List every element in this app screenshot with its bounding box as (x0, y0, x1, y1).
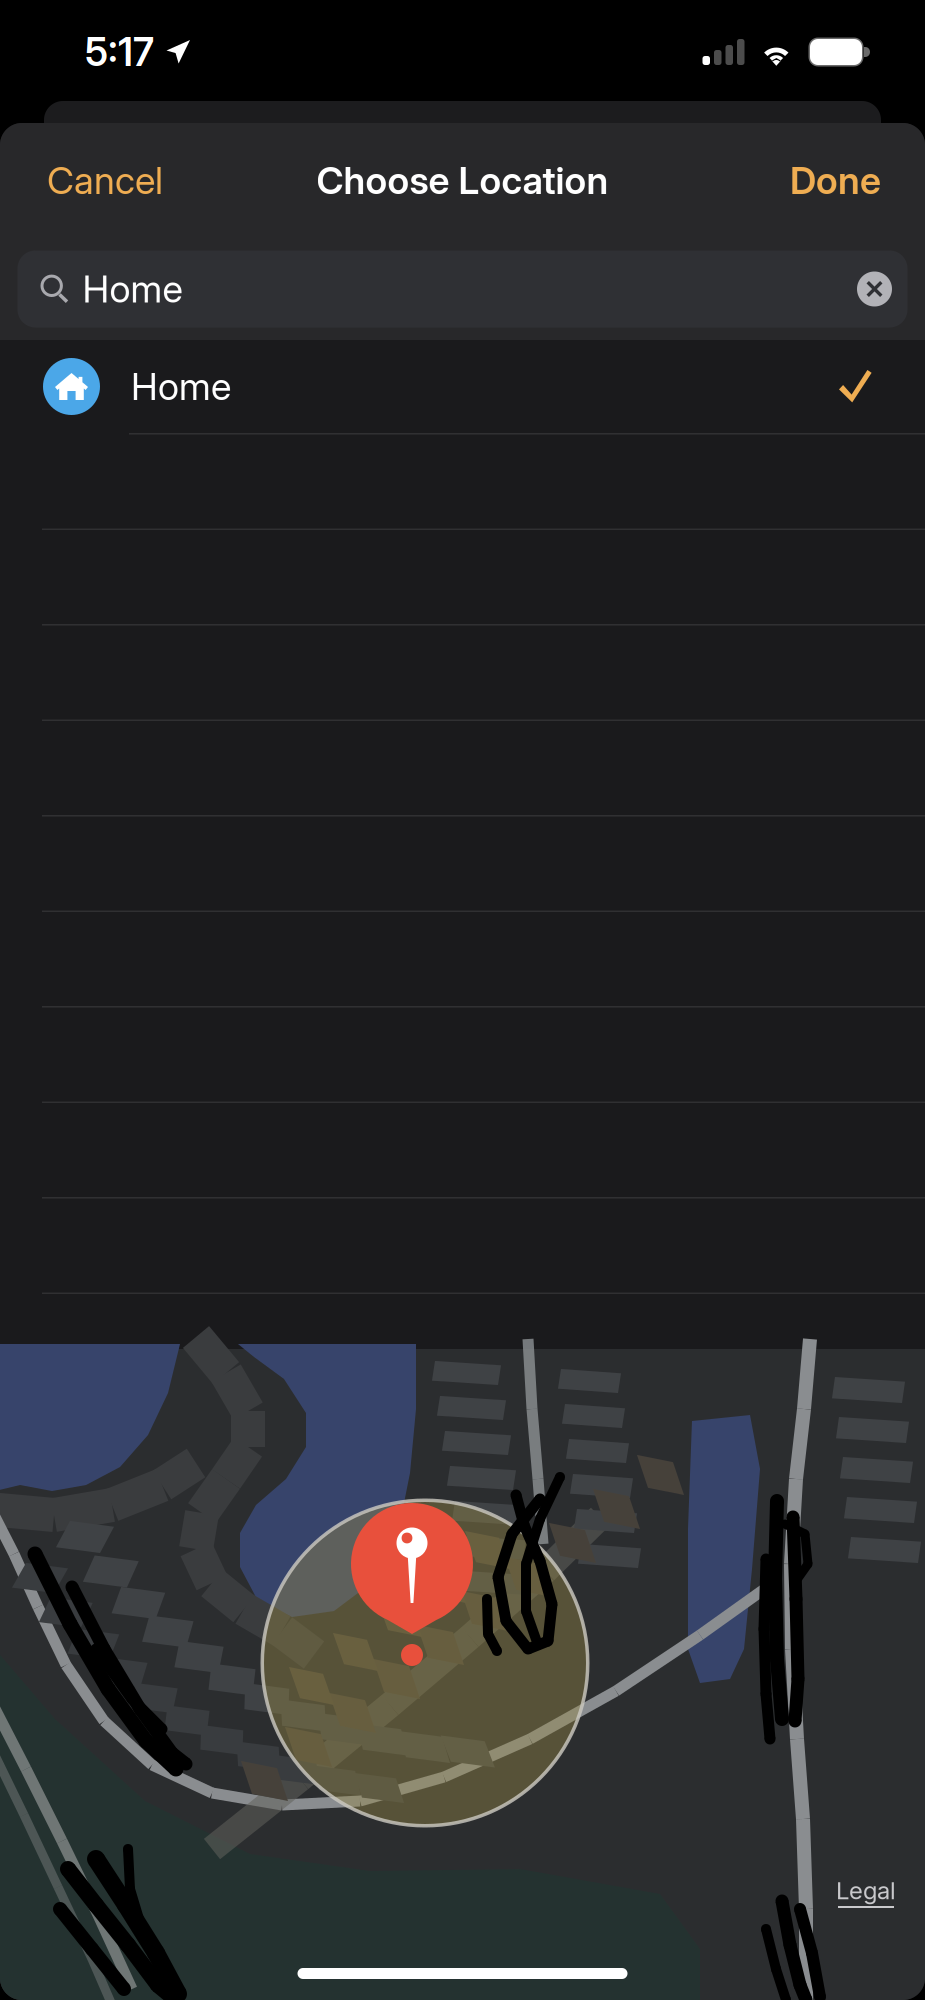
staticText: Home (131, 364, 231, 409)
staticText: 5:17 (85, 29, 154, 75)
button[interactable]: Legal (836, 1876, 896, 1908)
button[interactable]: Done (780, 144, 891, 217)
staticText: Done (790, 158, 881, 203)
button[interactable]: Clear text (846, 261, 902, 317)
staticText: Cancel (47, 158, 163, 203)
staticText: Choose Location (316, 158, 608, 203)
staticText: Home (82, 266, 182, 312)
button[interactable]: Cancel (37, 144, 173, 217)
staticText: Legal (836, 1876, 896, 1905)
button[interactable]: Home (0, 340, 925, 433)
